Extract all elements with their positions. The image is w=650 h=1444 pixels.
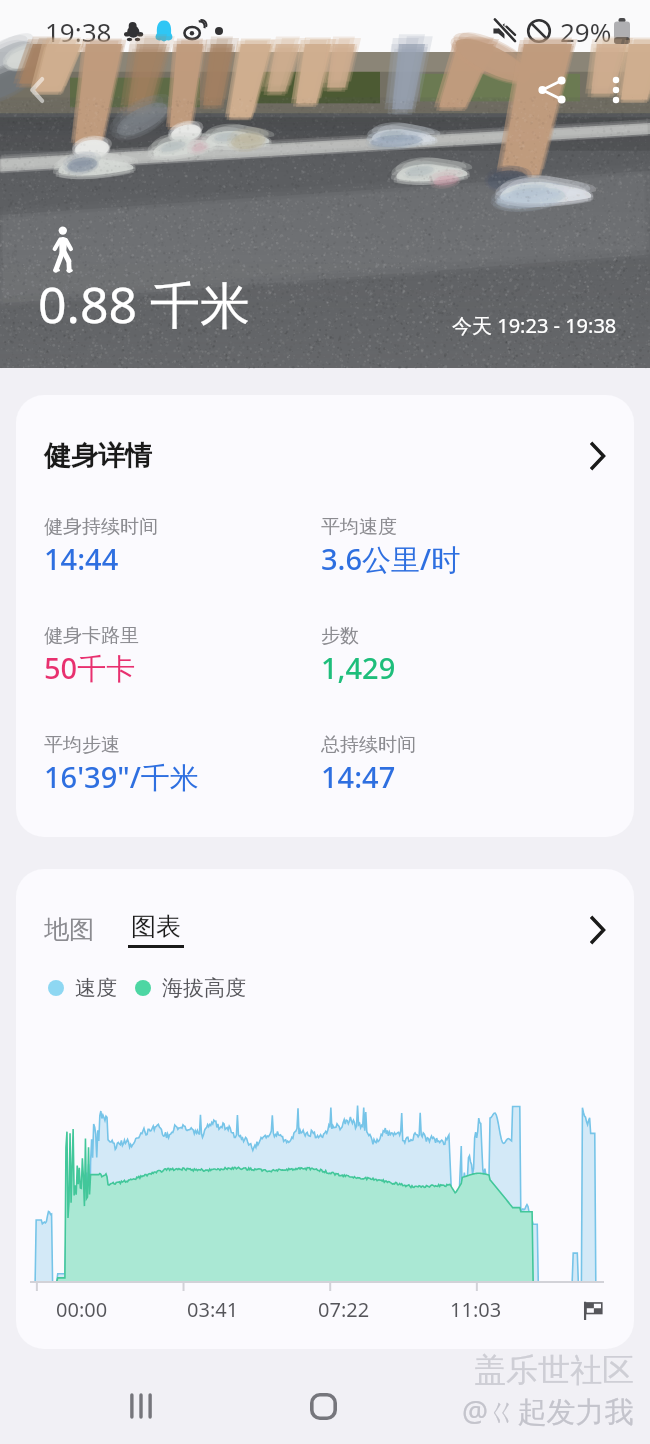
- button[interactable]: Share: [520, 58, 584, 122]
- staticText: 地图: [44, 914, 94, 945]
- staticText: 平均步速: [44, 733, 120, 757]
- staticText: 00:00: [56, 1296, 108, 1323]
- staticText: 步数: [321, 624, 359, 648]
- button[interactable]: More options: [584, 58, 648, 122]
- button[interactable]: Back: [460, 1379, 550, 1433]
- staticText: 0.88 千米: [38, 270, 251, 338]
- staticText: 11:03: [450, 1296, 502, 1323]
- staticText: 29%: [560, 14, 612, 49]
- staticText: 3.6公里/时: [321, 539, 461, 579]
- staticText: 盖乐世社区: [474, 1350, 634, 1390]
- staticText: 1,429: [321, 648, 396, 687]
- staticText: 19:38: [45, 14, 112, 49]
- button[interactable]: Recents: [96, 1379, 186, 1433]
- staticText: 07:22: [318, 1296, 370, 1323]
- staticText: 图表: [131, 911, 181, 942]
- staticText: 海拔高度: [162, 975, 246, 1001]
- staticText: 健身持续时间: [44, 515, 158, 539]
- staticText: 平均速度: [321, 515, 397, 539]
- button[interactable]: 图表: [128, 911, 184, 948]
- button[interactable]: 地图: [44, 910, 94, 949]
- staticText: 今天 19:23 - 19:38: [452, 312, 617, 339]
- button[interactable]: 健身详情: [44, 439, 612, 473]
- button[interactable]: Open chart: [582, 915, 612, 945]
- staticText: 健身卡路里: [44, 624, 139, 648]
- staticText: 03:41: [187, 1296, 239, 1323]
- button[interactable]: Home: [278, 1379, 368, 1433]
- staticText: 16'39"/千米: [44, 757, 199, 797]
- button[interactable]: Back: [6, 58, 70, 122]
- staticText: 健身详情: [44, 439, 152, 473]
- staticText: 14:44: [44, 539, 119, 578]
- staticText: 总持续时间: [321, 733, 416, 757]
- staticText: 50千卡: [44, 648, 136, 688]
- staticText: 14:47: [321, 757, 396, 796]
- staticText: 速度: [75, 975, 117, 1001]
- staticText: @ㄍ起发力我: [462, 1391, 634, 1431]
